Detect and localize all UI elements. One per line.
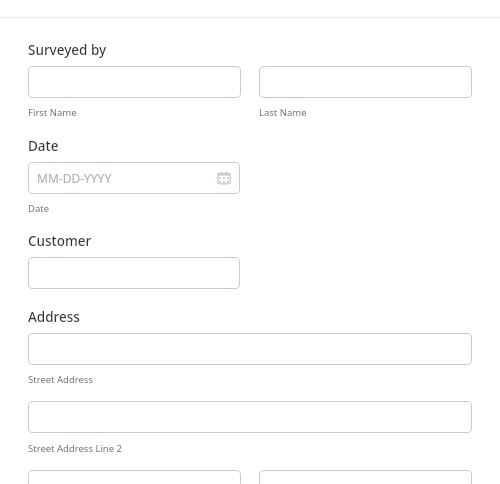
button[interactable]: [259, 66, 472, 98]
staticText: Street Address Line 2: [28, 442, 122, 455]
staticText: Street Address: [28, 373, 93, 386]
button[interactable]: MM-DD-YYYY: [28, 162, 240, 194]
staticText: MM-DD-YYYY: [37, 170, 112, 186]
staticText: Date: [28, 137, 59, 155]
button[interactable]: [28, 257, 240, 289]
staticText: Date: [28, 202, 50, 215]
button[interactable]: [28, 470, 241, 484]
button[interactable]: [28, 66, 241, 98]
staticText: Address: [28, 308, 80, 326]
button[interactable]: [28, 333, 472, 365]
button[interactable]: Open calendar: [217, 171, 231, 185]
staticText: Customer: [28, 232, 92, 250]
button[interactable]: [28, 401, 472, 433]
staticText: Surveyed by: [28, 41, 107, 59]
staticText: First Name: [28, 106, 77, 119]
staticText: Last Name: [259, 106, 307, 119]
button[interactable]: [259, 470, 472, 484]
